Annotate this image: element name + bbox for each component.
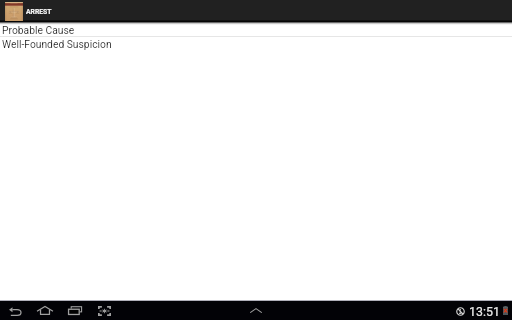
- button[interactable]: Well-Founded Suspicion: [0, 37, 512, 50]
- button[interactable]: [0, 0, 512, 20]
- button[interactable]: Home: [37, 306, 53, 315]
- staticText: Probable Cause: [2, 24, 75, 36]
- button[interactable]: Back: [9, 307, 22, 316]
- staticText: 13:51: [469, 304, 500, 319]
- button[interactable]: Screenshot: [98, 306, 111, 316]
- staticText: ARREST: [26, 8, 52, 16]
- button[interactable]: Notifications: [243, 301, 269, 320]
- button[interactable]: Recent apps: [68, 306, 82, 315]
- button[interactable]: Silent mode: [456, 307, 465, 316]
- other: Battery: [503, 306, 508, 315]
- button[interactable]: Probable Cause: [0, 23, 512, 37]
- staticText: Well-Founded Suspicion: [2, 38, 112, 50]
